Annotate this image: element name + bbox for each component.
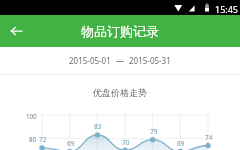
button[interactable]: 2015-05-01: [0, 47, 240, 74]
staticText: 74: [205, 133, 213, 142]
button[interactable]: Back: [5, 20, 27, 42]
staticText: 2015-05-01: [69, 55, 111, 66]
staticText: 72: [39, 135, 47, 144]
staticText: 83: [94, 122, 102, 131]
staticText: 优盘价格走势: [0, 87, 240, 98]
staticText: —: [116, 55, 124, 66]
staticText: 15:45: [215, 3, 239, 15]
staticText: 70: [122, 138, 130, 147]
staticText: 100: [26, 112, 37, 120]
staticText: 80: [29, 135, 37, 143]
staticText: 69: [67, 139, 75, 148]
staticText: 79: [150, 127, 158, 136]
staticText: 69: [177, 139, 185, 148]
staticText: 物品订购记录: [81, 23, 159, 39]
staticText: 2015-05-31: [129, 55, 171, 66]
